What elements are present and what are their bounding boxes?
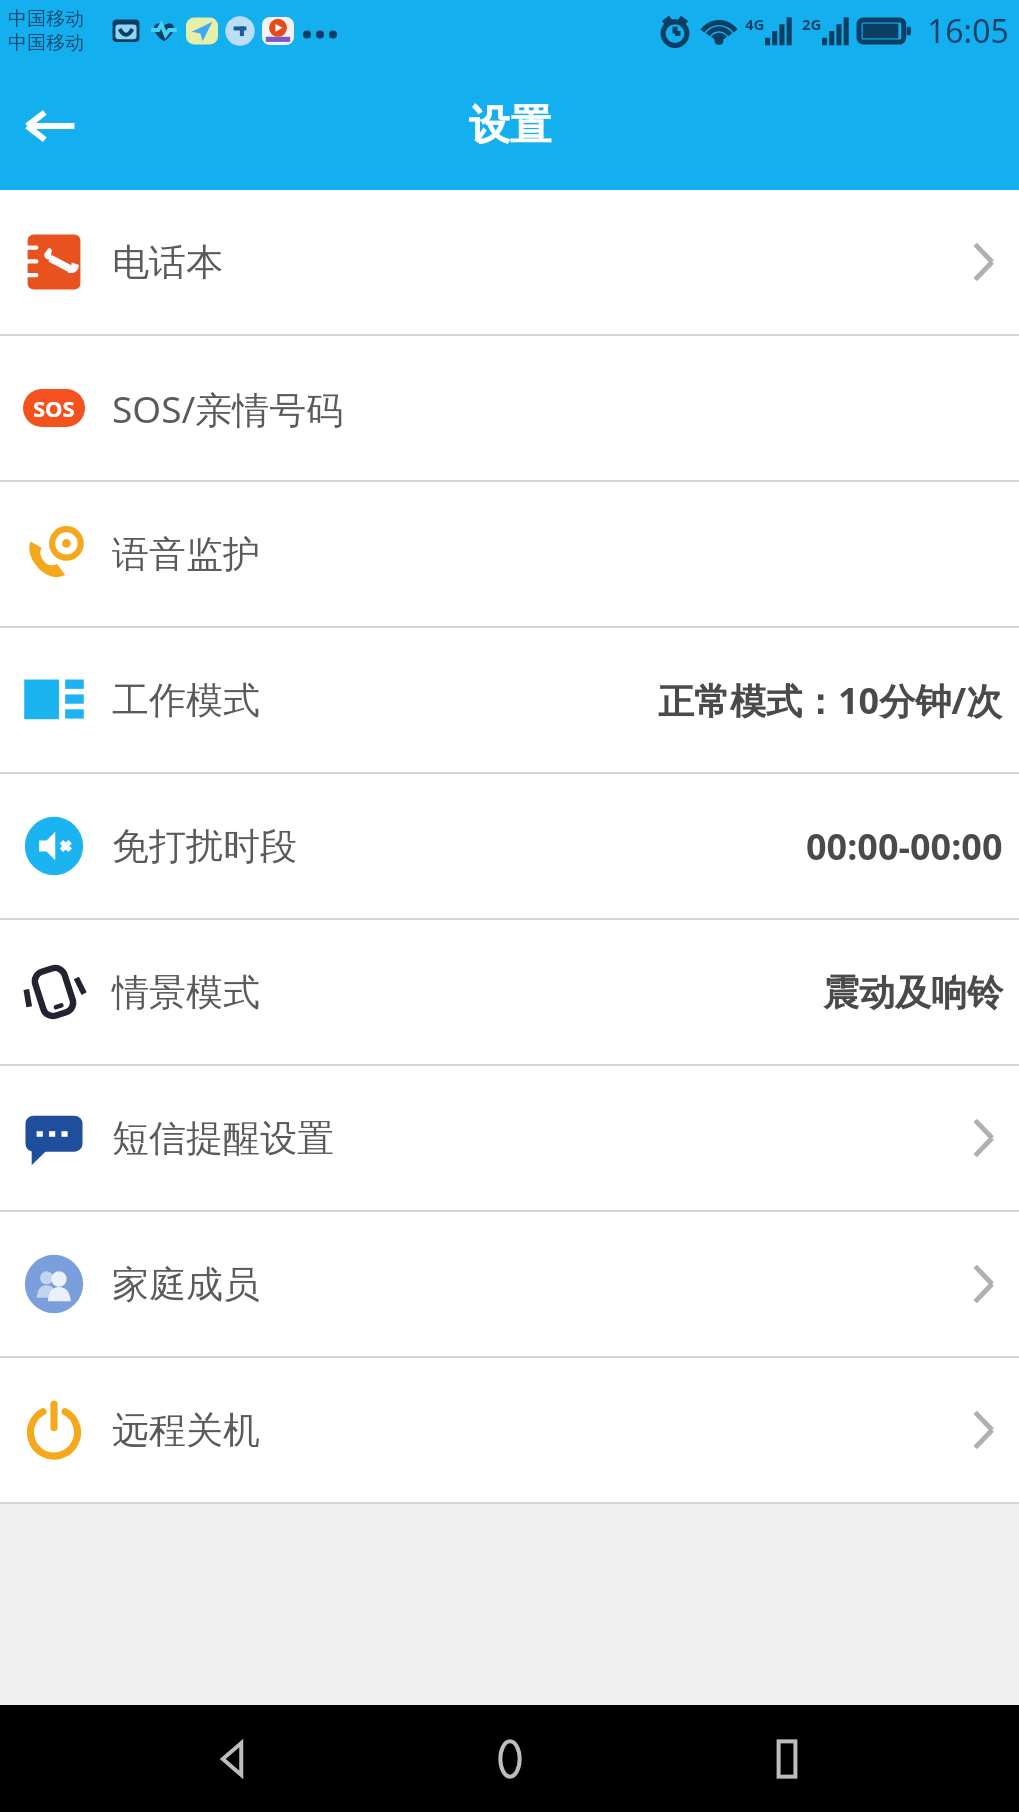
button[interactable]: 工作模式 bbox=[0, 628, 1019, 772]
button[interactable]: 家庭成员 bbox=[0, 1212, 1019, 1356]
staticText: 中国移动 bbox=[8, 7, 84, 31]
staticText: 短信提醒设置 bbox=[112, 1115, 334, 1162]
button[interactable]: 远程关机 bbox=[0, 1358, 1019, 1502]
staticText: 家庭成员 bbox=[112, 1261, 260, 1308]
staticText: SOS/亲情号码 bbox=[112, 383, 344, 434]
staticText: 远程关机 bbox=[112, 1407, 260, 1454]
staticText: 工作模式 bbox=[112, 677, 260, 724]
button[interactable]: SOS bbox=[0, 336, 1019, 480]
button[interactable]: 返回 bbox=[14, 90, 86, 162]
button[interactable]: 返回 bbox=[187, 1714, 277, 1804]
staticText: 2G bbox=[802, 14, 822, 34]
staticText: 00:00-00:00 bbox=[806, 822, 1003, 871]
staticText: 正常模式：10分钟/次 bbox=[658, 676, 1003, 725]
button[interactable]: 电话本 bbox=[0, 190, 1019, 334]
staticText: 免打扰时段 bbox=[112, 823, 297, 870]
staticText: 震动及响铃 bbox=[823, 970, 1003, 1015]
staticText: 情景模式 bbox=[112, 969, 260, 1016]
button[interactable]: 免打扰时段 bbox=[0, 774, 1019, 918]
button[interactable]: 情景模式 bbox=[0, 920, 1019, 1064]
button[interactable]: 短信提醒设置 bbox=[0, 1066, 1019, 1210]
staticText: SOS bbox=[33, 393, 75, 423]
staticText: 16:05 bbox=[927, 9, 1009, 53]
staticText: 语音监护 bbox=[112, 531, 260, 578]
button[interactable]: 语音监护 bbox=[0, 482, 1019, 626]
button[interactable]: 最近任务 bbox=[742, 1714, 832, 1804]
staticText: 4G bbox=[745, 14, 765, 34]
staticText: 设置 bbox=[469, 100, 551, 152]
staticText: 电话本 bbox=[112, 239, 223, 286]
staticText: 中国移动 bbox=[8, 31, 84, 55]
button[interactable]: 主屏幕 bbox=[465, 1714, 555, 1804]
